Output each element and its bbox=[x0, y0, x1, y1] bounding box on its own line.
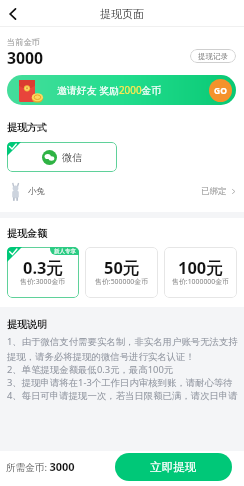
staticText: 提现方式 bbox=[7, 121, 47, 134]
staticText: 当前金币 bbox=[7, 37, 40, 47]
staticText: 售价:3000金币 bbox=[20, 277, 66, 286]
staticText: 微信 bbox=[62, 151, 82, 164]
staticText: 邀请好友 奖励2000金币 bbox=[57, 83, 162, 97]
staticText: 1、由于微信支付需要实名制，非实名用户账号无法支持提现，请务必将提现的微信号进行… bbox=[7, 335, 238, 363]
staticText: 100元 bbox=[178, 256, 223, 278]
staticText: 3、提现申请将在1-3个工作日内审核到账，请耐心等待 bbox=[7, 376, 233, 389]
staticText: 2、单笔提现金额最低0.3元，最高100元 bbox=[7, 363, 174, 376]
staticText: 提现金额 bbox=[7, 227, 47, 240]
button[interactable]: 100元 bbox=[164, 247, 237, 298]
staticText: 50元 bbox=[104, 256, 140, 278]
staticText: 0.3元 bbox=[23, 256, 63, 278]
staticText: 小兔 bbox=[28, 186, 45, 197]
button[interactable]: 提现记录 bbox=[190, 49, 236, 63]
staticText: 已绑定 bbox=[201, 186, 227, 197]
button[interactable]: 50元 bbox=[85, 247, 158, 298]
button[interactable]: 微信 bbox=[7, 142, 117, 172]
button[interactable]: Back bbox=[2, 3, 24, 25]
staticText: 提现说明 bbox=[7, 318, 47, 331]
button[interactable]: 0.3元 bbox=[7, 247, 79, 298]
staticText: 所需金币: 3000 bbox=[6, 459, 75, 474]
button[interactable]: 小兔 bbox=[0, 178, 244, 204]
staticText: 售价:500000金币 bbox=[95, 277, 149, 286]
staticText: 新人专享 bbox=[54, 248, 76, 255]
staticText: 售价:1000000金币 bbox=[172, 277, 229, 286]
staticText: 立即提现 bbox=[150, 460, 197, 475]
button[interactable]: GO bbox=[209, 79, 232, 102]
staticText: 3000 bbox=[7, 47, 44, 69]
staticText: GO bbox=[214, 85, 227, 97]
button[interactable]: 邀请好友 奖励2000金币 bbox=[7, 75, 236, 105]
staticText: 提现记录 bbox=[198, 52, 228, 61]
button[interactable]: 立即提现 bbox=[115, 453, 232, 481]
staticText: 4、每日可申请提现一次，若当日限额已满，请次日申请 bbox=[7, 389, 238, 402]
staticText: 提现页面 bbox=[100, 7, 144, 21]
